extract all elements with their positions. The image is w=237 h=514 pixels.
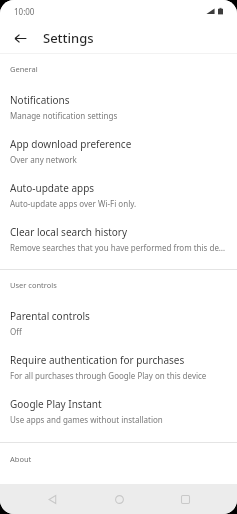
button[interactable]: App download preference (0, 129, 237, 173)
staticText: Use apps and games without installation (10, 414, 163, 425)
button[interactable]: Parental controls (0, 301, 237, 345)
staticText: Auto-update apps over Wi-Fi only. (10, 198, 137, 209)
staticText: Parental controls (10, 309, 90, 323)
staticText: App download preference (10, 137, 132, 151)
staticText: User controls (10, 280, 57, 290)
staticText: About (10, 454, 32, 464)
button[interactable]: Open source licenses (0, 475, 237, 514)
staticText: General (10, 64, 38, 74)
staticText: Auto-update apps (10, 181, 95, 195)
staticText: Notifications (10, 93, 70, 107)
staticText: Open source licenses (10, 481, 110, 495)
button[interactable]: Clear local search history (0, 217, 237, 261)
staticText: Remove searches that you have performed … (10, 242, 229, 253)
button[interactable]: Home (104, 484, 134, 514)
button[interactable]: Require authentication for purchases (0, 345, 237, 389)
staticText: Manage notification settings (10, 110, 118, 121)
staticText: Over any network (10, 154, 77, 165)
button[interactable]: Auto-update apps (0, 173, 237, 217)
button[interactable]: Back (37, 484, 67, 514)
button[interactable]: Google Play Instant (0, 389, 237, 433)
button[interactable]: Back (6, 24, 34, 52)
button[interactable]: Notifications (0, 85, 237, 129)
staticText: License details for open source software (10, 498, 162, 509)
staticText: Google Play Instant (10, 397, 102, 411)
staticText: Require authentication for purchases (10, 353, 185, 367)
staticText: 10:00 (14, 6, 35, 17)
button[interactable]: Recent apps (170, 484, 200, 514)
staticText: Settings (43, 29, 94, 47)
staticText: Clear local search history (10, 225, 128, 239)
staticText: Off (10, 326, 22, 337)
staticText: For all purchases through Google Play on… (10, 370, 207, 381)
